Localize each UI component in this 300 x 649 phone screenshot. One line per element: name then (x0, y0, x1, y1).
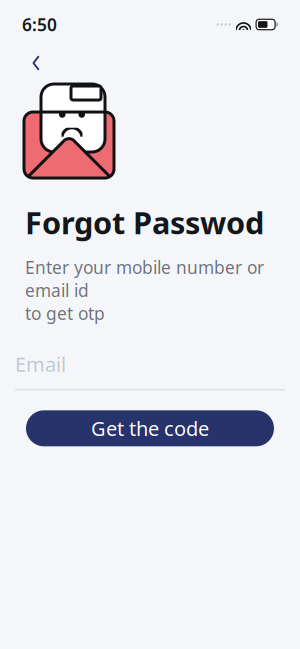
button[interactable]: Back (19, 46, 53, 80)
staticText: Enter your mobile number or email id to … (25, 256, 264, 325)
staticText: Get the code (91, 415, 209, 442)
staticText: Forgot Passwod (25, 202, 264, 243)
button[interactable]: Get the code (26, 410, 274, 446)
staticText: Email (15, 351, 66, 377)
staticText: 6:50 (22, 13, 57, 36)
